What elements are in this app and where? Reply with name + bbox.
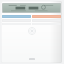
button[interactable]: Display panel (2, 3, 61, 13)
button[interactable]: Display panel (1, 1, 62, 63)
button[interactable]: Heat (32, 15, 61, 18)
button[interactable]: Power dial (28, 27, 36, 35)
